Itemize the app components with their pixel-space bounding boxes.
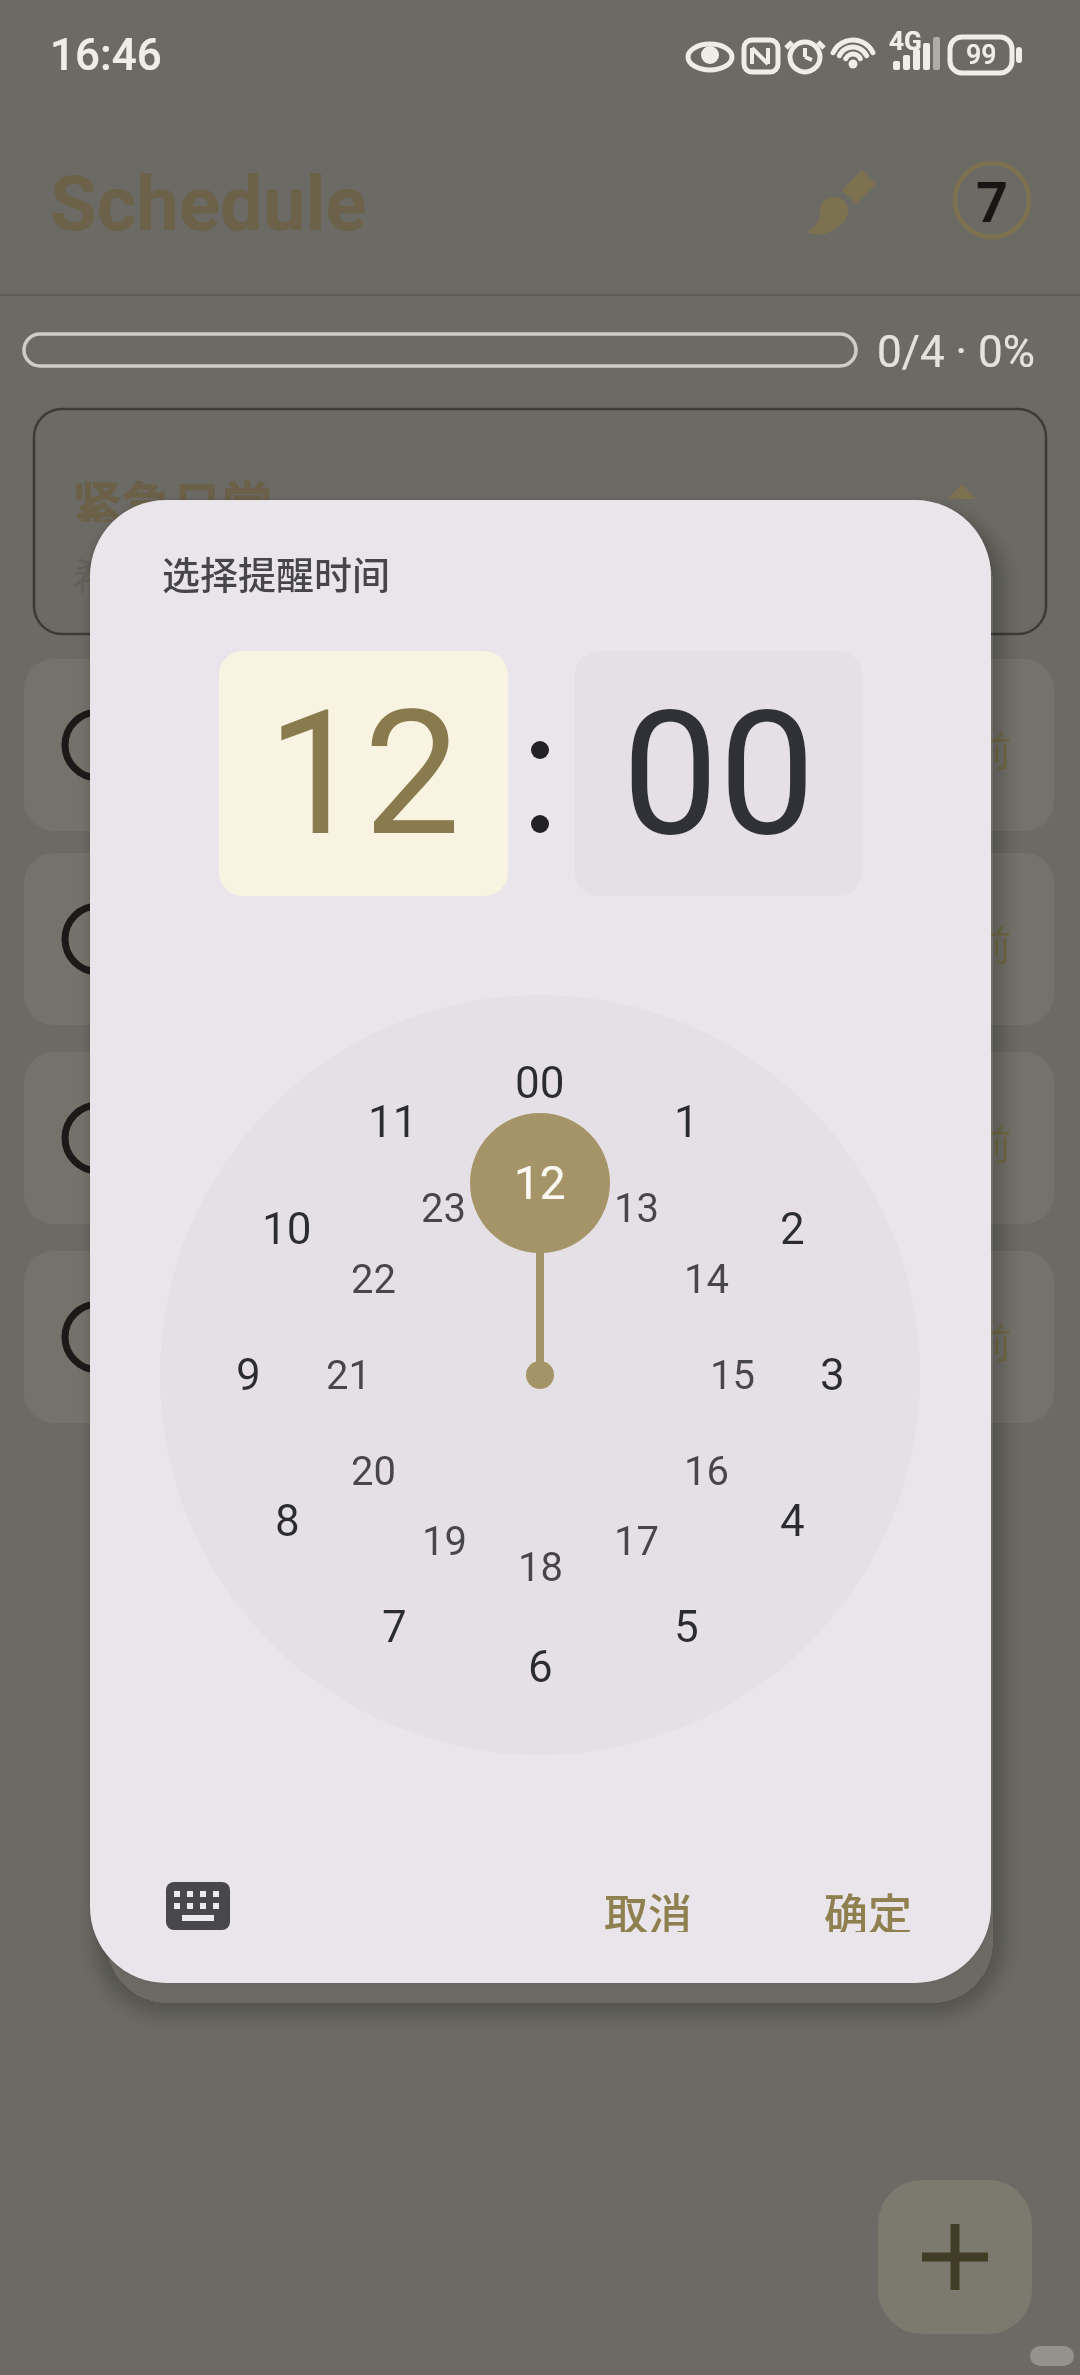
staticText: 11: [368, 1096, 418, 1148]
staticText: 3小时前: [869, 1113, 1012, 1163]
staticText: 12: [514, 1156, 566, 1210]
staticText: 16:46: [50, 29, 162, 81]
staticText: 取消: [604, 1880, 692, 1932]
staticText: 确定: [824, 1880, 912, 1932]
staticText: 22: [351, 1256, 396, 1303]
staticText: 19: [422, 1518, 467, 1565]
staticText: 00: [515, 1057, 565, 1109]
staticText: 4: [780, 1495, 805, 1547]
staticText: Schedule: [50, 159, 367, 248]
staticText: 3: [820, 1349, 845, 1401]
staticText: 14: [684, 1256, 729, 1303]
staticText: 15: [710, 1352, 755, 1399]
staticText: 7: [976, 170, 1009, 230]
staticText: 0/4 · 0%: [877, 326, 1035, 374]
staticText: 18: [518, 1544, 563, 1591]
staticText: 2: [780, 1203, 805, 1255]
staticText: 紧急日常: [72, 466, 272, 522]
staticText: 6: [528, 1641, 553, 1693]
staticText: 3小时前: [869, 914, 1012, 964]
staticText: 5: [674, 1601, 699, 1653]
staticText: 选择提醒时间: [162, 545, 391, 600]
staticText: 4G: [889, 26, 922, 54]
staticText: 3小时前: [869, 720, 1012, 770]
staticText: 13: [614, 1185, 659, 1232]
staticText: 希望今天比昨天更好: [72, 546, 432, 596]
staticText: 21: [326, 1352, 371, 1399]
staticText: 16: [684, 1448, 729, 1495]
staticText: 20: [351, 1448, 396, 1495]
staticText: 9: [236, 1349, 261, 1401]
staticText: 1: [674, 1096, 699, 1148]
staticText: 12: [267, 673, 461, 875]
staticText: 8: [275, 1495, 300, 1547]
staticText: 00: [622, 673, 816, 875]
staticText: 10: [262, 1203, 312, 1255]
staticText: 23: [421, 1185, 466, 1232]
staticText: 99: [966, 39, 997, 71]
staticText: 17: [614, 1518, 659, 1565]
staticText: 7: [382, 1601, 407, 1653]
staticText: 3小时前: [869, 1312, 1012, 1362]
